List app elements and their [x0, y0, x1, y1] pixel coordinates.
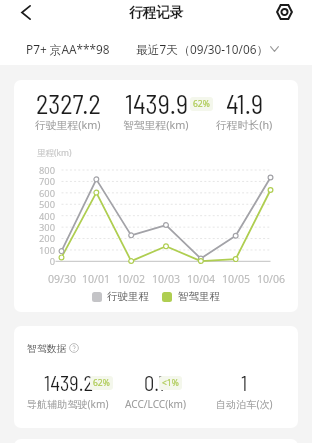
staticText: 700 — [35, 175, 55, 188]
staticText: 行程时长(h) — [216, 117, 273, 132]
staticText: 100 — [35, 244, 55, 257]
staticText: ACC/LCC(km) — [125, 397, 187, 411]
staticText: 09/30 — [46, 272, 78, 286]
staticText: 300 — [35, 221, 55, 234]
staticText: 800 — [35, 164, 55, 177]
staticText: P7+ 京AA***98 — [26, 41, 110, 57]
button[interactable]: 1439.2 — [24, 371, 112, 409]
staticText: 62% — [93, 377, 110, 389]
staticText: 里程(km) — [37, 147, 72, 159]
staticText: 1439.2 — [44, 371, 93, 395]
staticText: 400 — [35, 210, 55, 223]
button[interactable]: Settings — [273, 1, 295, 23]
button[interactable]: 最近7天（09/30-10/06） — [136, 41, 279, 57]
button[interactable]: 智驾数据 — [27, 342, 79, 354]
button[interactable]: 41.9 — [200, 88, 288, 134]
staticText: 10/05 — [220, 272, 252, 286]
staticText: 10/04 — [185, 272, 217, 286]
staticText: 智驾里程(km) — [123, 117, 189, 132]
staticText: 自动泊车(次) — [216, 397, 273, 411]
staticText: 10/02 — [115, 272, 147, 286]
staticText: 0.7 — [144, 371, 168, 395]
staticText: 10/03 — [150, 272, 182, 286]
button[interactable]: 0.7 — [112, 371, 200, 409]
staticText: 1 — [241, 371, 248, 395]
button[interactable]: 1 — [200, 371, 288, 409]
staticText: 2327.2 — [36, 88, 101, 119]
button[interactable]: P7+ 京AA***98 — [26, 41, 110, 57]
staticText: 62% — [193, 98, 210, 110]
staticText: 行驶里程 — [107, 290, 150, 303]
staticText: 行程记录 — [129, 4, 184, 21]
staticText: 500 — [35, 198, 55, 211]
staticText: 智驾数据 — [27, 342, 67, 354]
staticText: 10/01 — [80, 272, 112, 286]
staticText: 导航辅助驾驶(km) — [27, 397, 109, 411]
staticText: 200 — [35, 232, 55, 245]
staticText: 1439.9 — [125, 88, 188, 119]
other: Info — [69, 343, 79, 353]
staticText: 600 — [35, 187, 55, 200]
button[interactable]: Back — [15, 1, 37, 23]
staticText: 0 — [35, 255, 55, 268]
staticText: 10/06 — [255, 272, 287, 286]
staticText: 行驶里程(km) — [35, 117, 101, 132]
staticText: 最近7天（09/30-10/06） — [136, 41, 269, 57]
button[interactable]: 1439.9 — [112, 88, 200, 134]
staticText: <1% — [162, 377, 179, 389]
staticText: 智驾里程 — [178, 290, 221, 303]
button[interactable]: 2327.2 — [24, 88, 112, 134]
staticText: 41.9 — [226, 88, 263, 119]
